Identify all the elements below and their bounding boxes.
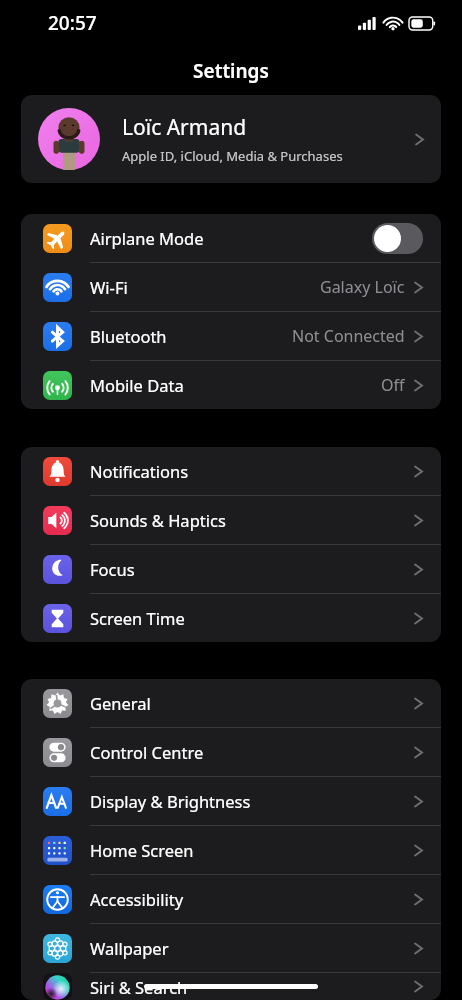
staticText: Mobile Data	[90, 374, 184, 396]
staticText: Off	[381, 374, 405, 396]
button[interactable]: Home Screen	[21, 826, 441, 875]
staticText: Notifications	[90, 460, 189, 482]
staticText: Screen Time	[90, 607, 185, 629]
button[interactable]: Loïc Armand	[21, 95, 441, 183]
button[interactable]: Accessibility	[21, 875, 441, 924]
button[interactable]: Airplane Mode	[21, 214, 441, 263]
staticText: Wallpaper	[90, 937, 169, 959]
staticText: General	[90, 692, 151, 714]
staticText: Not Connected	[292, 325, 405, 347]
staticText: Airplane Mode	[90, 227, 204, 249]
button[interactable]: Focus	[21, 545, 441, 594]
button[interactable]: Siri & Search	[21, 973, 441, 1000]
button[interactable]: Wi-Fi	[21, 263, 441, 312]
button[interactable]: Mobile Data	[21, 361, 441, 409]
staticText: Focus	[90, 558, 135, 580]
staticText: Accessibility	[90, 888, 184, 910]
button[interactable]: Bluetooth	[21, 312, 441, 361]
button[interactable]: Screen Time	[21, 594, 441, 642]
staticText: Apple ID, iCloud, Media & Purchases	[122, 147, 343, 165]
button[interactable]: Airplane Mode toggle	[372, 223, 423, 254]
staticText: Sounds & Haptics	[90, 509, 226, 531]
button[interactable]: Notifications	[21, 447, 441, 496]
staticText: Wi-Fi	[90, 276, 128, 298]
staticText: Bluetooth	[90, 325, 167, 347]
staticText: Display & Brightness	[90, 790, 251, 812]
staticText: 20:57	[48, 10, 97, 36]
staticText: Settings	[193, 58, 269, 84]
staticText: Home Screen	[90, 839, 194, 861]
staticText: Loïc Armand	[122, 113, 247, 142]
button[interactable]: Control Centre	[21, 728, 441, 777]
button[interactable]: Display & Brightness	[21, 777, 441, 826]
staticText: Control Centre	[90, 741, 204, 763]
button[interactable]: General	[21, 679, 441, 728]
button[interactable]: Sounds & Haptics	[21, 496, 441, 545]
staticText: Galaxy Loïc	[320, 276, 405, 298]
staticText: Siri & Search	[90, 976, 188, 998]
button[interactable]: Wallpaper	[21, 924, 441, 973]
